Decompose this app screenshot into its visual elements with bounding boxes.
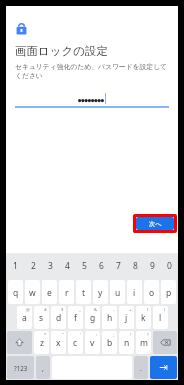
- button[interactable]: b: [102, 331, 117, 354]
- button[interactable]: z: [34, 331, 49, 354]
- staticText: 画面ロックの設定: [15, 44, 109, 58]
- staticText: 7: [116, 260, 121, 272]
- staticText: $: [61, 307, 64, 313]
- button[interactable]: [15, 91, 169, 105]
- staticText: u: [115, 287, 121, 299]
- button[interactable]: x: [51, 331, 66, 354]
- button[interactable]: q: [8, 280, 23, 304]
- button[interactable]: 1: [6, 253, 24, 279]
- staticText: 6: [99, 260, 104, 272]
- button[interactable]: 9: [144, 253, 161, 279]
- staticText: ?123: [14, 364, 28, 372]
- button[interactable]: i: [127, 280, 142, 304]
- staticText: f: [74, 312, 77, 324]
- staticText: e: [47, 287, 52, 299]
- staticText: v: [90, 337, 95, 349]
- staticText: 1: [13, 260, 18, 272]
- button[interactable]: t: [76, 280, 91, 304]
- staticText: a: [22, 312, 27, 324]
- staticText: 2: [31, 260, 36, 272]
- button[interactable]: 6: [93, 253, 110, 279]
- staticText: p: [166, 287, 172, 299]
- staticText: b: [107, 337, 113, 349]
- staticText: 8: [133, 260, 138, 272]
- staticText: !: [130, 332, 132, 338]
- staticText: *: [44, 332, 47, 338]
- button[interactable]: n: [119, 331, 134, 354]
- button[interactable]: e: [42, 280, 57, 304]
- button[interactable]: y: [93, 280, 108, 304]
- staticText: +: [129, 307, 132, 313]
- staticText: t: [82, 287, 86, 299]
- staticText: m: [140, 337, 148, 349]
- button[interactable]: 5: [76, 253, 93, 279]
- staticText: ): [164, 307, 166, 313]
- staticText: s: [39, 312, 44, 324]
- button[interactable]: k: [136, 306, 151, 329]
- staticText: ": [62, 332, 64, 338]
- staticText: :: [96, 332, 98, 338]
- staticText: g: [90, 312, 96, 324]
- staticText: ?: [147, 332, 149, 338]
- button[interactable]: p: [161, 280, 176, 304]
- staticText: l: [159, 312, 162, 324]
- staticText: &: [94, 307, 98, 313]
- staticText: x: [56, 337, 61, 349]
- staticText: -: [113, 307, 115, 313]
- button[interactable]: a: [17, 306, 32, 329]
- button[interactable]: Enter: [150, 356, 177, 379]
- staticText: o: [149, 287, 155, 299]
- button[interactable]: m: [136, 331, 151, 354]
- staticText: ': [80, 332, 81, 338]
- button[interactable]: 次へ: [136, 217, 174, 230]
- button[interactable]: 7: [110, 253, 127, 279]
- button[interactable]: 4: [59, 253, 76, 279]
- button[interactable]: 0: [161, 253, 178, 279]
- staticText: w: [29, 287, 36, 299]
- button[interactable]: g: [85, 306, 100, 329]
- staticText: _: [79, 307, 81, 313]
- button[interactable]: 2: [24, 253, 42, 279]
- staticText: 4: [65, 260, 70, 272]
- staticText: n: [124, 337, 130, 349]
- staticText: r: [65, 287, 69, 299]
- staticText: i: [133, 287, 136, 299]
- button[interactable]: f: [68, 306, 83, 329]
- button[interactable]: d: [51, 306, 66, 329]
- button[interactable]: w: [25, 280, 40, 304]
- staticText: h: [107, 312, 113, 324]
- button[interactable]: s: [34, 306, 49, 329]
- staticText: #: [44, 307, 47, 313]
- staticText: q: [13, 287, 19, 299]
- button[interactable]: h: [102, 306, 117, 329]
- staticText: 5: [82, 260, 87, 272]
- staticText: ;: [113, 332, 115, 338]
- button[interactable]: o: [144, 280, 159, 304]
- staticText: .: [140, 364, 142, 374]
- button[interactable]: j: [119, 306, 134, 329]
- button[interactable]: Backspace: [153, 331, 177, 354]
- button[interactable]: r: [59, 280, 74, 304]
- button[interactable]: 8: [127, 253, 144, 279]
- staticText: ,: [42, 364, 44, 374]
- staticText: y: [98, 287, 103, 299]
- button[interactable]: c: [68, 331, 83, 354]
- staticText: 9: [150, 260, 155, 272]
- button[interactable]: .: [134, 356, 148, 379]
- button[interactable]: 3: [42, 253, 59, 279]
- button[interactable]: l: [153, 306, 168, 329]
- staticText: @: [26, 307, 30, 313]
- staticText: 3: [48, 260, 53, 272]
- staticText: z: [40, 337, 44, 349]
- staticText: d: [56, 312, 62, 324]
- staticText: (: [147, 307, 149, 313]
- button[interactable]: u: [110, 280, 125, 304]
- staticText: k: [141, 312, 146, 324]
- staticText: c: [73, 337, 78, 349]
- button[interactable]: Shift: [7, 331, 32, 354]
- button[interactable]: v: [85, 331, 100, 354]
- button[interactable]: ,: [36, 356, 50, 379]
- staticText: 0: [167, 260, 172, 272]
- button[interactable]: ?123: [7, 356, 34, 379]
